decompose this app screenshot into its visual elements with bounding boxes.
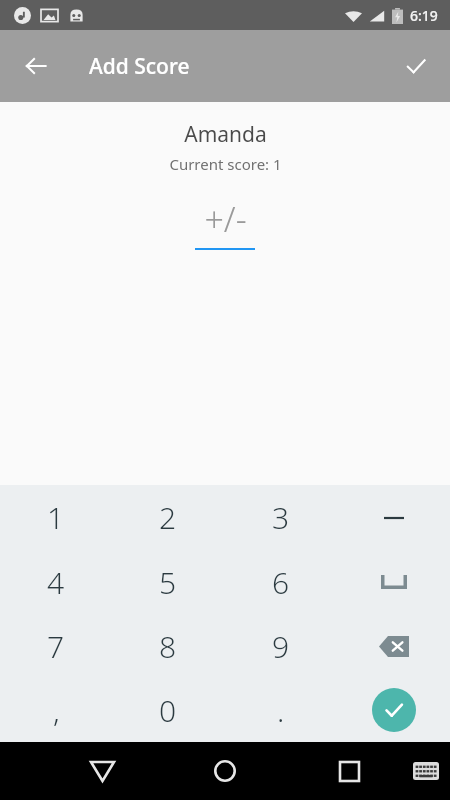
button[interactable]: 5 bbox=[112, 550, 224, 614]
staticText: 1 bbox=[47, 497, 65, 538]
button[interactable]: Done bbox=[337, 678, 450, 742]
button[interactable]: Back bbox=[12, 42, 60, 90]
staticText: , bbox=[53, 690, 60, 731]
button[interactable]: Save bbox=[392, 42, 440, 90]
staticText: Current score: 1 bbox=[169, 154, 282, 174]
button[interactable]: 9 bbox=[224, 614, 337, 678]
button[interactable]: 6 bbox=[224, 550, 337, 614]
staticText: . bbox=[277, 690, 285, 731]
button[interactable]: Minus bbox=[337, 485, 450, 550]
button[interactable]: Recents bbox=[325, 747, 373, 795]
button[interactable]: Backspace bbox=[337, 614, 450, 678]
staticText: 9 bbox=[272, 626, 290, 667]
button[interactable]: 2 bbox=[112, 485, 224, 550]
button[interactable]: 0 bbox=[112, 678, 224, 742]
staticText: 4 bbox=[47, 562, 65, 603]
staticText: +/- bbox=[204, 196, 247, 242]
staticText: Add Score bbox=[89, 52, 190, 81]
button[interactable]: Space bbox=[337, 550, 450, 614]
staticText: Amanda bbox=[184, 120, 267, 149]
staticText: 6 bbox=[272, 562, 290, 603]
staticText: 7 bbox=[47, 626, 65, 667]
button[interactable]: 4 bbox=[0, 550, 112, 614]
button[interactable]: 8 bbox=[112, 614, 224, 678]
button[interactable]: , bbox=[0, 678, 112, 742]
button[interactable]: 3 bbox=[224, 485, 337, 550]
staticText: 8 bbox=[159, 626, 177, 667]
button[interactable]: . bbox=[224, 678, 337, 742]
staticText: 3 bbox=[272, 497, 290, 538]
staticText: 5 bbox=[159, 562, 177, 603]
button[interactable]: 7 bbox=[0, 614, 112, 678]
staticText: 2 bbox=[159, 497, 177, 538]
button[interactable]: Home bbox=[201, 747, 249, 795]
button[interactable]: 1 bbox=[0, 485, 112, 550]
button[interactable]: Back bbox=[78, 747, 126, 795]
staticText: 6:19 bbox=[410, 6, 438, 25]
button[interactable]: Switch keyboard bbox=[405, 750, 447, 792]
staticText: 0 bbox=[159, 690, 177, 731]
